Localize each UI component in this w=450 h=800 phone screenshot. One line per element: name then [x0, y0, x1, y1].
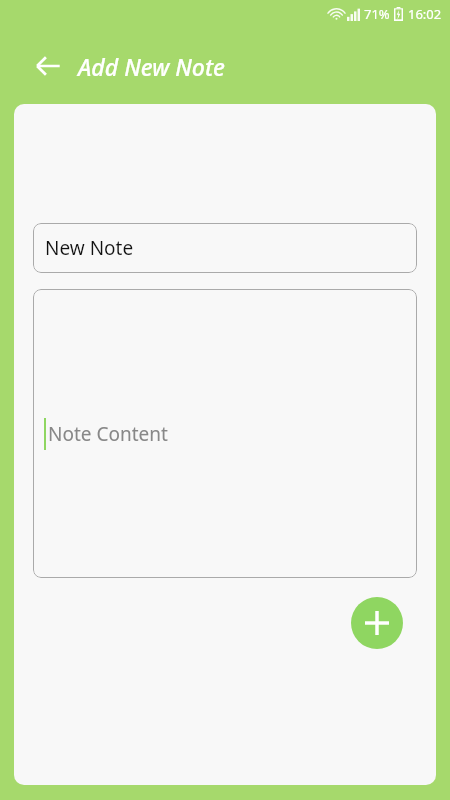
button[interactable]: Add note [351, 597, 403, 649]
staticText: 16:02 [408, 5, 442, 23]
staticText: New Note [45, 235, 134, 261]
button[interactable]: Back [28, 46, 68, 86]
button[interactable]: New Note [33, 223, 417, 273]
button[interactable]: Note Content [33, 289, 417, 578]
staticText: Note Content [48, 421, 168, 447]
staticText: 71% [364, 5, 390, 23]
staticText: Add New Note [78, 51, 225, 82]
